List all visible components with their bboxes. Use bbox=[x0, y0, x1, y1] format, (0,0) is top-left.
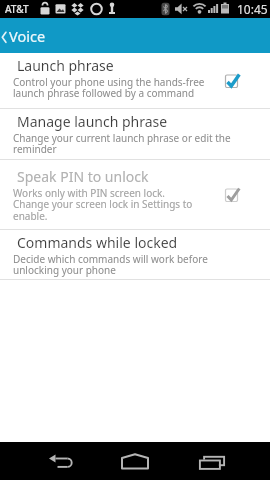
staticText: Manage launch phrase bbox=[17, 112, 168, 131]
button[interactable]: Launch phrase bbox=[0, 53, 270, 108]
staticText: 10:45 bbox=[237, 1, 268, 17]
button[interactable]: Manage launch phrase bbox=[0, 109, 270, 159]
staticText: Launch phrase bbox=[17, 56, 114, 75]
staticText: Speak PIN to unlock bbox=[17, 167, 149, 186]
button[interactable]: Speak PIN to unlock bbox=[0, 160, 270, 229]
staticText: Voice bbox=[9, 26, 46, 46]
staticText: Commands while locked bbox=[17, 233, 178, 252]
button[interactable]: Commands while locked bbox=[0, 230, 270, 279]
staticText: Change your current launch phrase or edi… bbox=[13, 131, 231, 156]
staticText: Works only with PIN screen lock. Change … bbox=[13, 186, 193, 223]
button[interactable] bbox=[180, 442, 270, 480]
staticText: AT&T bbox=[5, 2, 29, 16]
staticText: Control your phone using the hands-free … bbox=[13, 75, 205, 100]
button[interactable] bbox=[90, 442, 180, 480]
staticText: Decide which commands will work before u… bbox=[13, 252, 208, 277]
button[interactable]: Voice bbox=[0, 18, 270, 53]
button[interactable] bbox=[0, 442, 90, 480]
